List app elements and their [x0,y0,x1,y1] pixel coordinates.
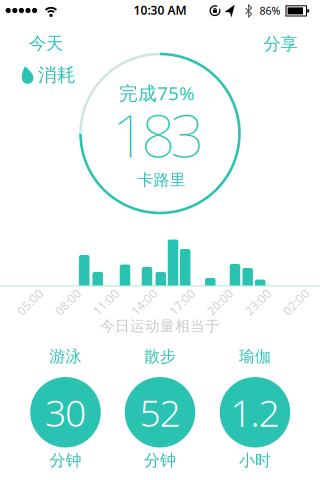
staticText: 卡路里 [137,170,185,190]
staticText: 23:00 [242,294,273,310]
staticText: 散步 [144,347,176,366]
staticText: 08:00 [52,294,83,310]
button[interactable]: 30 [0,0,320,480]
button[interactable]: 今天 [29,33,63,54]
staticText: 11:00 [90,294,121,310]
staticText: 1.2 [230,387,279,437]
staticText: 20:00 [204,294,235,310]
button[interactable]: 分享 [263,33,297,55]
staticText: 17:00 [166,294,197,310]
staticText: 完成75% [119,81,195,105]
staticText: 86% [259,3,280,18]
staticText: 02:00 [280,294,311,310]
staticText: 52 [139,387,180,437]
staticText: 游泳 [49,347,81,366]
staticText: 瑜伽 [239,347,271,366]
button[interactable]: 52 [0,0,320,480]
staticText: 今日运动量相当于 [100,317,220,335]
staticText: 14:00 [128,294,159,310]
staticText: 10:30 AM [133,2,186,18]
staticText: 分钟 [144,451,176,470]
staticText: 05:00 [14,294,45,310]
staticText: 183 [112,94,204,174]
staticText: 分享 [263,33,297,55]
staticText: 30 [45,387,86,437]
button[interactable]: 消耗 [21,63,76,86]
button[interactable]: 1.2 [0,0,320,480]
staticText: 小时 [239,451,271,470]
staticText: 今天 [29,33,63,54]
staticText: 消耗 [38,63,76,86]
staticText: 分钟 [49,451,81,470]
